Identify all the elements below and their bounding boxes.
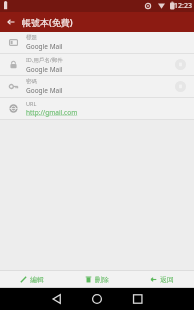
staticText: 帳號本(免費) (22, 16, 73, 28)
staticText: 返回 (160, 275, 174, 284)
staticText: Google Mail (26, 65, 63, 74)
staticText: 編輯 (30, 275, 44, 284)
staticText: Google Mail (26, 86, 63, 95)
button[interactable]: 返回 (129, 271, 194, 287)
staticText: 標題 (26, 34, 37, 41)
staticText: http://gmail.com (26, 108, 78, 117)
button[interactable]: Copy Username (166, 54, 194, 75)
button[interactable]: 編輯 (0, 271, 64, 287)
staticText: 12:23 (174, 1, 192, 11)
button[interactable]: 標題 (0, 32, 194, 53)
staticText: ID,用戶名/郵件 (26, 56, 63, 64)
staticText: URL (26, 100, 37, 107)
staticText: 密碼 (26, 78, 37, 85)
button[interactable]: URL (0, 98, 194, 119)
button[interactable]: 刪除 (64, 271, 129, 287)
button[interactable]: Back (0, 12, 22, 32)
staticText: 刪除 (95, 275, 109, 284)
button[interactable]: ID,用戶名/郵件 (0, 54, 194, 75)
button[interactable]: 密碼 (0, 76, 194, 97)
staticText: Google Mail (26, 42, 63, 51)
button[interactable]: Copy Password (166, 76, 194, 97)
